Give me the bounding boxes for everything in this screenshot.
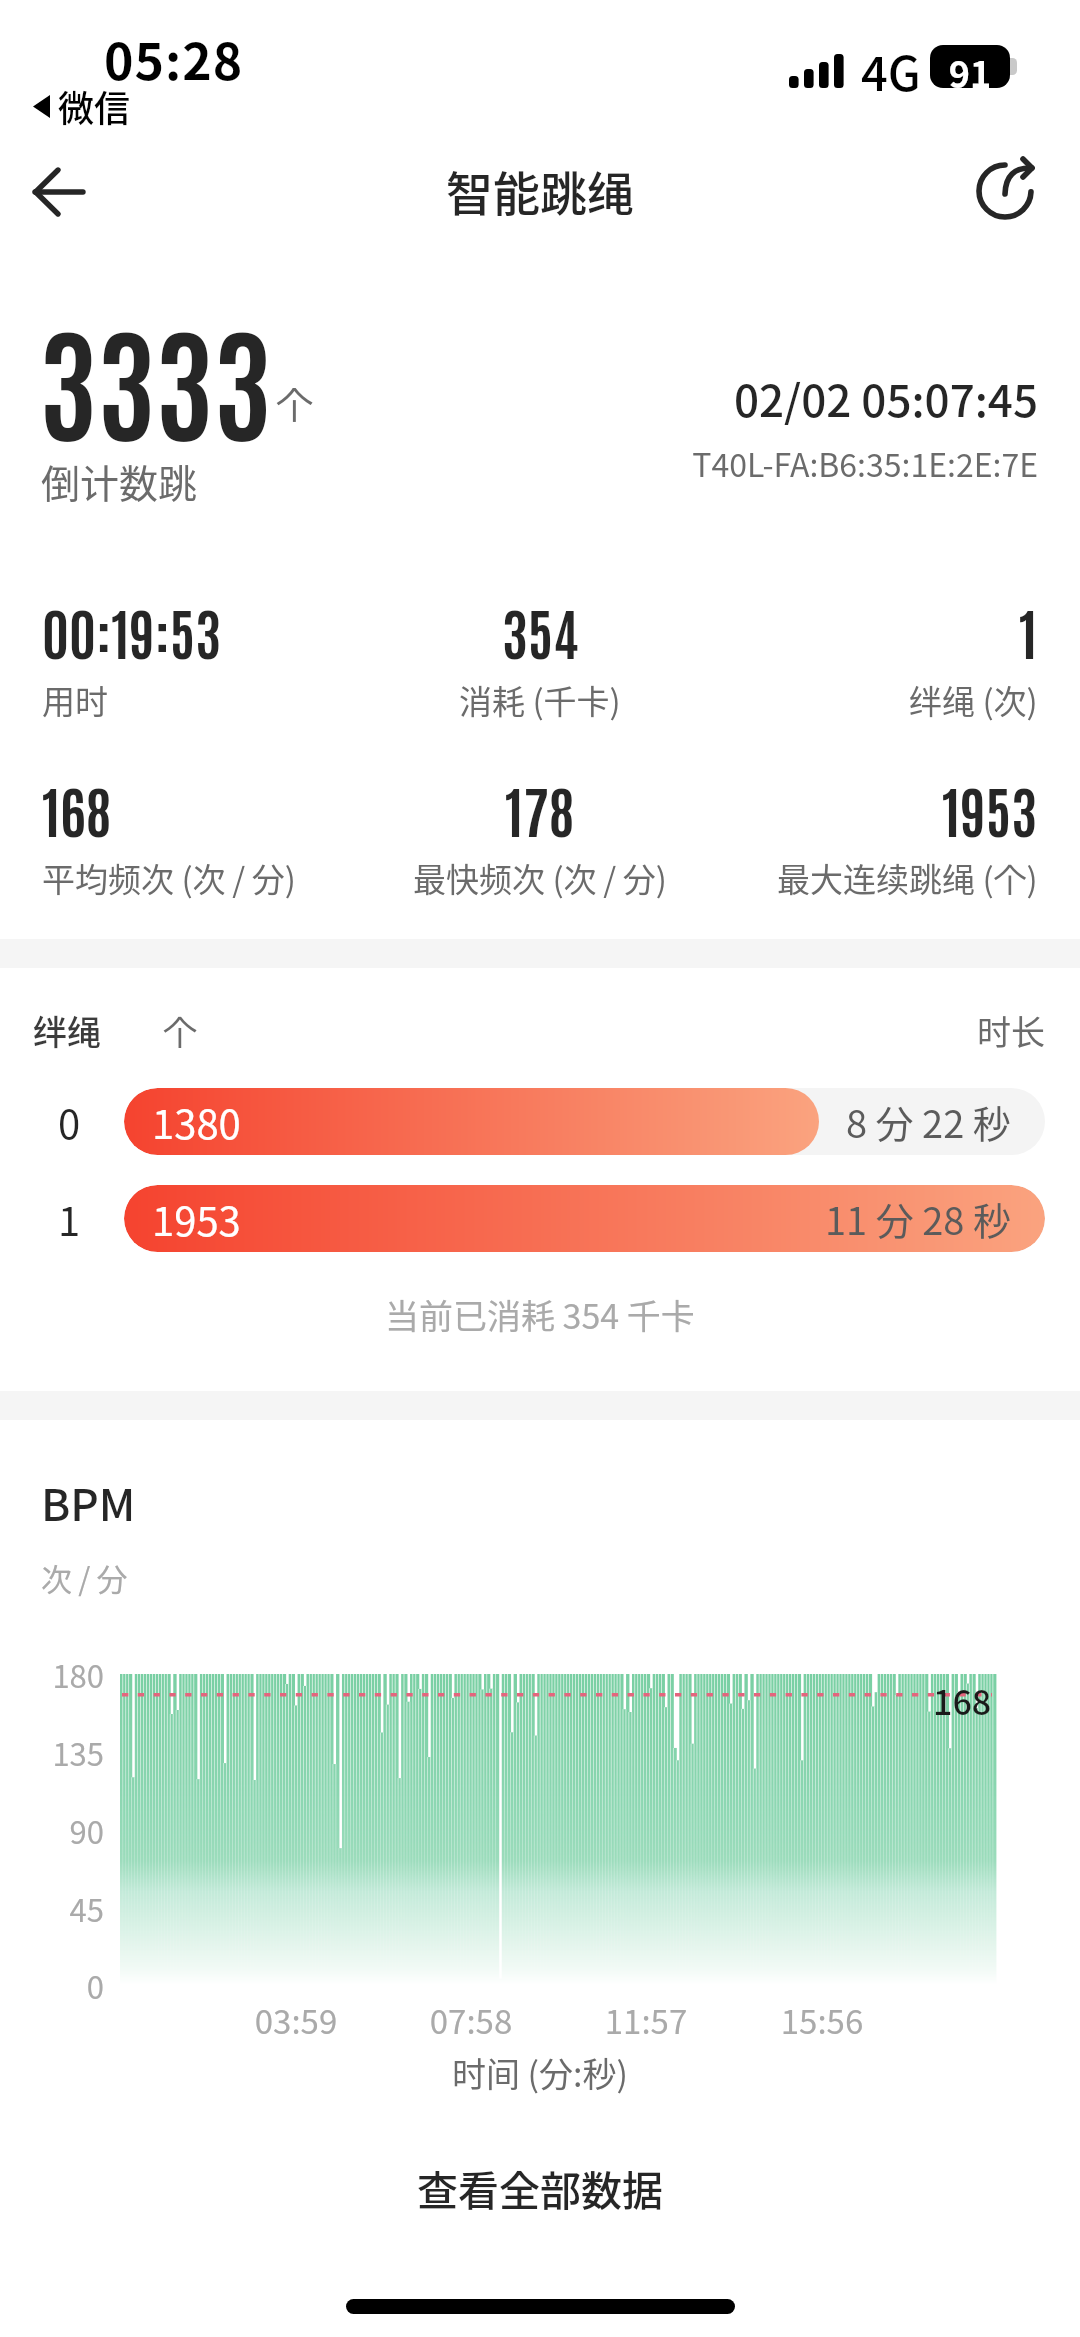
staticText: 00:19:53 bbox=[42, 595, 222, 666]
staticText: T40L-FA:B6:35:1E:2E:7E bbox=[0, 440, 1038, 486]
staticText: 02/02 05:07:45 bbox=[0, 366, 1038, 430]
staticText: 07:58 bbox=[401, 1996, 541, 2044]
staticText: 354 bbox=[502, 595, 579, 666]
staticText: 微信 bbox=[58, 80, 131, 132]
staticText: 1953 bbox=[152, 1190, 241, 1248]
button[interactable]: 查看全部数据 bbox=[377, 2150, 703, 2225]
staticText: 1953 bbox=[942, 773, 1038, 844]
staticText: 智能跳绳 bbox=[446, 156, 634, 224]
staticText: 个 bbox=[276, 376, 313, 430]
staticText: 绊绳 (次) bbox=[909, 676, 1038, 724]
staticText: 消耗 (千卡) bbox=[459, 676, 621, 724]
staticText: 03:59 bbox=[226, 1996, 366, 2044]
staticText: 1380 bbox=[152, 1093, 241, 1151]
staticText: 最大连续跳绳 (个) bbox=[777, 854, 1038, 902]
staticText: 时间 (分:秒) bbox=[452, 2048, 629, 2097]
button[interactable]: 1380 bbox=[124, 1088, 1045, 1155]
staticText: 绊绳 bbox=[33, 1006, 101, 1055]
staticText: 倒计数跳 bbox=[41, 453, 198, 509]
staticText: 135 bbox=[0, 1730, 104, 1775]
button[interactable]: Share bbox=[958, 144, 1052, 238]
staticText: 次 / 分 bbox=[41, 1555, 128, 1600]
staticText: 168 bbox=[42, 773, 112, 844]
staticText: 91 bbox=[930, 46, 1010, 88]
staticText: 个 bbox=[163, 1006, 197, 1055]
staticText: 1 bbox=[58, 1190, 81, 1248]
button[interactable]: 1953 bbox=[124, 1185, 1045, 1252]
staticText: 4G bbox=[861, 36, 921, 104]
staticText: 45 bbox=[0, 1886, 104, 1931]
staticText: 05:28 bbox=[104, 22, 244, 94]
staticText: 当前已消耗 354 千卡 bbox=[385, 1290, 695, 1339]
staticText: 0 bbox=[58, 1093, 81, 1151]
staticText: 8 分 22 秒 bbox=[846, 1094, 1011, 1149]
staticText: 90 bbox=[0, 1808, 104, 1853]
staticText: 168 bbox=[933, 1676, 992, 1725]
staticText: 0 bbox=[0, 1963, 104, 2008]
staticText: 15:56 bbox=[752, 1996, 892, 2044]
staticText: 时长 bbox=[0, 1006, 1045, 1055]
staticText: 用时 bbox=[42, 676, 108, 724]
staticText: 查看全部数据 bbox=[417, 2158, 663, 2217]
staticText: 最快频次 (次 / 分) bbox=[413, 854, 667, 902]
staticText: 11 分 28 秒 bbox=[825, 1191, 1011, 1246]
staticText: 1 bbox=[1019, 595, 1038, 666]
staticText: 平均频次 (次 / 分) bbox=[42, 854, 296, 902]
staticText: 3333 bbox=[39, 298, 272, 458]
staticText: BPM bbox=[41, 1470, 136, 1534]
button[interactable]: Back bbox=[12, 145, 106, 239]
staticText: 11:57 bbox=[576, 1996, 716, 2044]
staticText: 180 bbox=[0, 1652, 104, 1697]
staticText: 178 bbox=[505, 773, 575, 844]
